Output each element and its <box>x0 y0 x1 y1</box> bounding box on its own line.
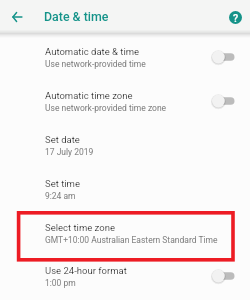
staticText: 1:00 pm <box>45 278 76 288</box>
staticText: 9:24 am <box>45 191 76 201</box>
staticText: Select time zone <box>45 222 115 233</box>
button[interactable]: Automatic time zone <box>0 82 250 126</box>
staticText: Use 24-hour format <box>45 265 127 276</box>
button[interactable]: Back <box>6 6 28 28</box>
button[interactable]: Help <box>226 8 244 26</box>
button[interactable]: Set time <box>0 170 250 214</box>
staticText: Automatic date & time <box>45 46 140 57</box>
button[interactable]: Automatic date & time <box>0 38 250 82</box>
button[interactable]: Use 24-hour format <box>0 258 250 300</box>
staticText: Use network-provided time zone <box>45 103 167 113</box>
staticText: Set date <box>45 134 80 145</box>
staticText: Automatic time zone <box>45 90 133 101</box>
button[interactable]: Select time zone <box>0 214 250 258</box>
button[interactable]: Set date <box>0 126 250 170</box>
staticText: 17 July 2019 <box>45 147 94 157</box>
staticText: Date & time <box>44 9 109 24</box>
staticText: Use network-provided time <box>45 59 146 69</box>
staticText: GMT+10:00 Australian Eastern Standard Ti… <box>45 235 218 245</box>
staticText: ? <box>233 12 239 24</box>
staticText: Set time <box>45 178 80 189</box>
